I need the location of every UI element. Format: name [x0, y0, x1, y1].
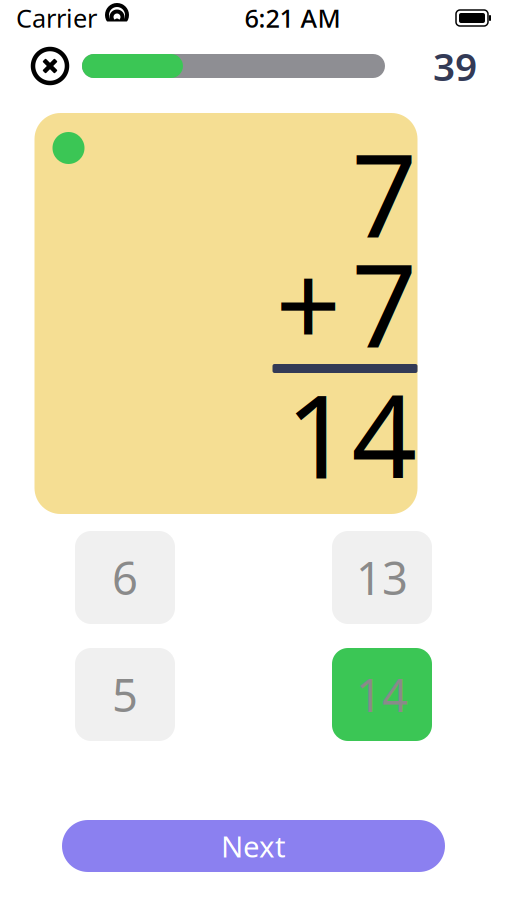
button[interactable]: 5: [75, 648, 175, 741]
button[interactable]: 14: [332, 648, 432, 741]
staticText: 7: [351, 117, 417, 269]
staticText: 14: [285, 358, 417, 510]
button[interactable]: 6: [75, 531, 175, 624]
staticText: 14: [356, 664, 408, 725]
button[interactable]: 13: [332, 531, 432, 624]
button[interactable]: Close: [30, 46, 70, 86]
button[interactable]: Next: [62, 820, 445, 872]
staticText: 7: [351, 227, 417, 379]
staticText: 5: [112, 664, 138, 725]
staticText: 6:21 AM: [244, 1, 340, 35]
staticText: Next: [221, 826, 286, 865]
staticText: 13: [356, 547, 408, 608]
staticText: Carrier: [16, 1, 97, 35]
staticText: 6: [112, 547, 138, 608]
staticText: +: [275, 227, 341, 379]
staticText: 39: [433, 40, 477, 92]
